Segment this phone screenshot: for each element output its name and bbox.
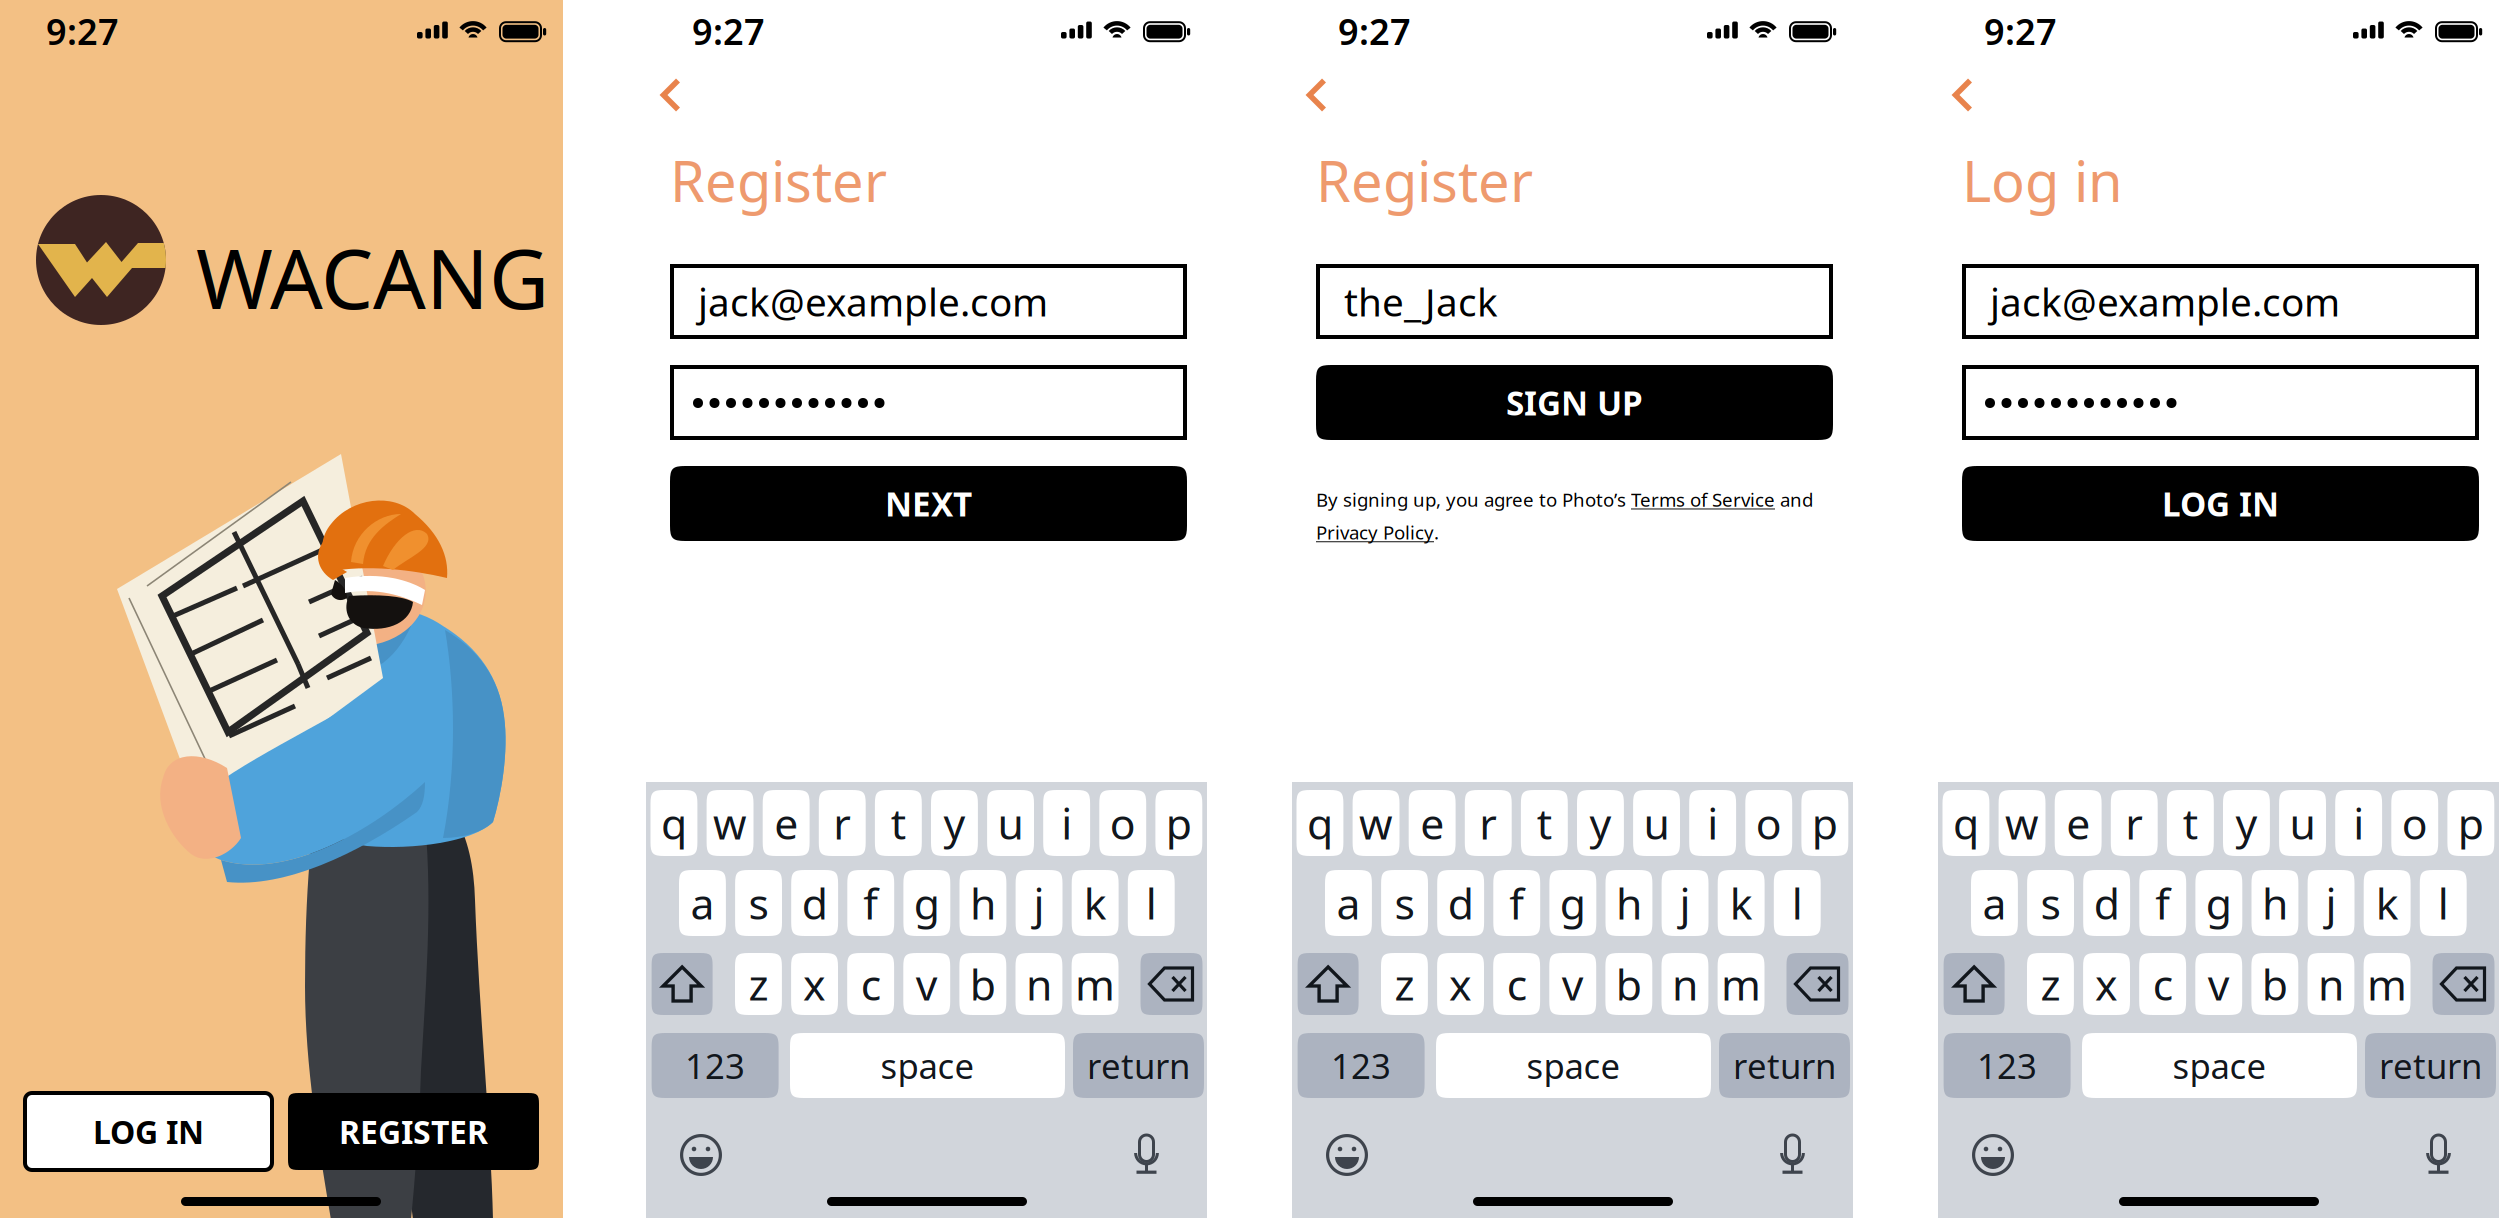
button[interactable]: a — [1325, 870, 1372, 936]
button[interactable]: 123 — [1298, 1033, 1425, 1098]
button[interactable]: i — [1043, 790, 1090, 856]
button[interactable]: d — [791, 870, 838, 936]
button[interactable]: return — [1719, 1033, 1850, 1098]
button[interactable]: NEXT — [670, 466, 1187, 541]
button[interactable]: e — [763, 790, 810, 856]
button[interactable]: Delete — [2432, 953, 2494, 1015]
button[interactable]: Shift — [1944, 953, 2005, 1015]
button[interactable]: Emoji — [1326, 1134, 1368, 1176]
button[interactable]: 123 — [1944, 1033, 2071, 1098]
button[interactable]: g — [2195, 870, 2242, 936]
button[interactable]: 123 — [652, 1033, 779, 1098]
button[interactable]: return — [2365, 1033, 2496, 1098]
button[interactable]: t — [1521, 790, 1568, 856]
button[interactable]: w — [707, 790, 753, 856]
button[interactable]: h — [959, 870, 1006, 936]
button[interactable]: h — [1605, 870, 1652, 936]
button[interactable]: b — [1605, 953, 1652, 1015]
button[interactable]: u — [2279, 790, 2326, 856]
button[interactable]: v — [2195, 953, 2242, 1015]
button[interactable]: m — [1072, 953, 1118, 1015]
button[interactable]: f — [1493, 870, 1540, 936]
button[interactable]: v — [1549, 953, 1596, 1015]
button[interactable]: z — [735, 953, 782, 1015]
button[interactable]: d — [2083, 870, 2130, 936]
button[interactable]: b — [959, 953, 1006, 1015]
button[interactable]: Dictation — [1781, 1134, 1804, 1174]
button[interactable]: n — [1015, 953, 1062, 1015]
button[interactable]: a — [1971, 870, 2018, 936]
button[interactable]: y — [1577, 790, 1624, 856]
button[interactable]: b — [2251, 953, 2298, 1015]
button[interactable]: k — [1072, 870, 1119, 936]
button[interactable]: t — [2167, 790, 2214, 856]
button[interactable]: LOG IN — [1962, 466, 2479, 541]
button[interactable]: m — [2364, 953, 2410, 1015]
button[interactable]: p — [2447, 790, 2494, 856]
button[interactable]: r — [1465, 790, 1512, 856]
button[interactable]: x — [791, 953, 838, 1015]
button[interactable]: o — [2391, 790, 2438, 856]
button[interactable]: m — [1718, 953, 1764, 1015]
button[interactable]: n — [2307, 953, 2354, 1015]
button[interactable]: REGISTER — [288, 1093, 539, 1170]
button[interactable]: v — [903, 953, 950, 1015]
button[interactable]: o — [1745, 790, 1792, 856]
button[interactable]: f — [2139, 870, 2186, 936]
button[interactable]: l — [1774, 870, 1821, 936]
button[interactable]: u — [987, 790, 1034, 856]
button[interactable]: j — [1016, 870, 1062, 936]
button[interactable]: x — [1437, 953, 1484, 1015]
button[interactable]: LOG IN — [25, 1093, 272, 1170]
button[interactable]: z — [1381, 953, 1428, 1015]
button[interactable]: q — [1296, 790, 1343, 856]
button[interactable]: Emoji — [1972, 1134, 2014, 1176]
button[interactable]: e — [2055, 790, 2102, 856]
button[interactable]: Back — [1939, 64, 1987, 126]
button[interactable]: Delete — [1786, 953, 1848, 1015]
button[interactable]: a — [679, 870, 726, 936]
button[interactable]: space — [1436, 1033, 1711, 1098]
button[interactable]: p — [1155, 790, 1202, 856]
button[interactable]: Delete — [1140, 953, 1202, 1015]
button[interactable]: Back — [1293, 64, 1341, 126]
button[interactable]: q — [1942, 790, 1989, 856]
button[interactable]: z — [2027, 953, 2074, 1015]
button[interactable]: s — [2027, 870, 2074, 936]
button[interactable]: j — [2308, 870, 2354, 936]
button[interactable]: space — [790, 1033, 1065, 1098]
button[interactable]: u — [1633, 790, 1680, 856]
button[interactable]: w — [1999, 790, 2045, 856]
button[interactable]: i — [1689, 790, 1736, 856]
button[interactable]: l — [2420, 870, 2467, 936]
button[interactable]: q — [650, 790, 697, 856]
button[interactable]: r — [2111, 790, 2158, 856]
button[interactable]: Back — [647, 64, 695, 126]
button[interactable]: d — [1437, 870, 1484, 936]
button[interactable]: k — [2364, 870, 2411, 936]
button[interactable]: Shift — [652, 953, 713, 1015]
button[interactable]: l — [1128, 870, 1175, 936]
button[interactable]: e — [1409, 790, 1456, 856]
button[interactable]: g — [903, 870, 950, 936]
button[interactable]: space — [2082, 1033, 2357, 1098]
button[interactable]: o — [1099, 790, 1146, 856]
button[interactable]: By signing up, you agree to Photo’s Term… — [1316, 487, 1816, 545]
button[interactable]: k — [1718, 870, 1765, 936]
button[interactable]: x — [2083, 953, 2130, 1015]
button[interactable]: n — [1661, 953, 1708, 1015]
button[interactable]: Dictation — [1135, 1134, 1158, 1174]
button[interactable]: s — [735, 870, 782, 936]
button[interactable]: SIGN UP — [1316, 365, 1833, 440]
button[interactable]: Shift — [1298, 953, 1359, 1015]
button[interactable]: p — [1801, 790, 1848, 856]
button[interactable]: y — [931, 790, 978, 856]
button[interactable]: y — [2223, 790, 2270, 856]
button[interactable]: s — [1381, 870, 1428, 936]
button[interactable]: r — [819, 790, 866, 856]
button[interactable]: t — [875, 790, 922, 856]
button[interactable]: return — [1073, 1033, 1204, 1098]
button[interactable]: f — [847, 870, 894, 936]
button[interactable]: Emoji — [680, 1134, 722, 1176]
button[interactable]: h — [2251, 870, 2298, 936]
